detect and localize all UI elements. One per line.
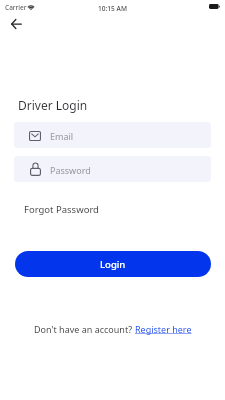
button[interactable]: Back bbox=[6, 13, 27, 34]
staticText: Don't have an account? bbox=[34, 323, 135, 335]
staticText: Carrier bbox=[5, 3, 27, 12]
staticText: Driver Login bbox=[18, 97, 88, 113]
button[interactable]: Login bbox=[15, 251, 211, 277]
button[interactable]: Email bbox=[14, 122, 211, 148]
button[interactable]: Register here bbox=[135, 323, 192, 335]
staticText: Email bbox=[50, 130, 74, 142]
button[interactable]: Forgot Password bbox=[24, 203, 99, 216]
staticText: 10:15 AM bbox=[98, 4, 127, 13]
staticText: Password bbox=[50, 164, 91, 176]
staticText: Login bbox=[100, 258, 126, 271]
button[interactable]: Password bbox=[14, 156, 211, 182]
